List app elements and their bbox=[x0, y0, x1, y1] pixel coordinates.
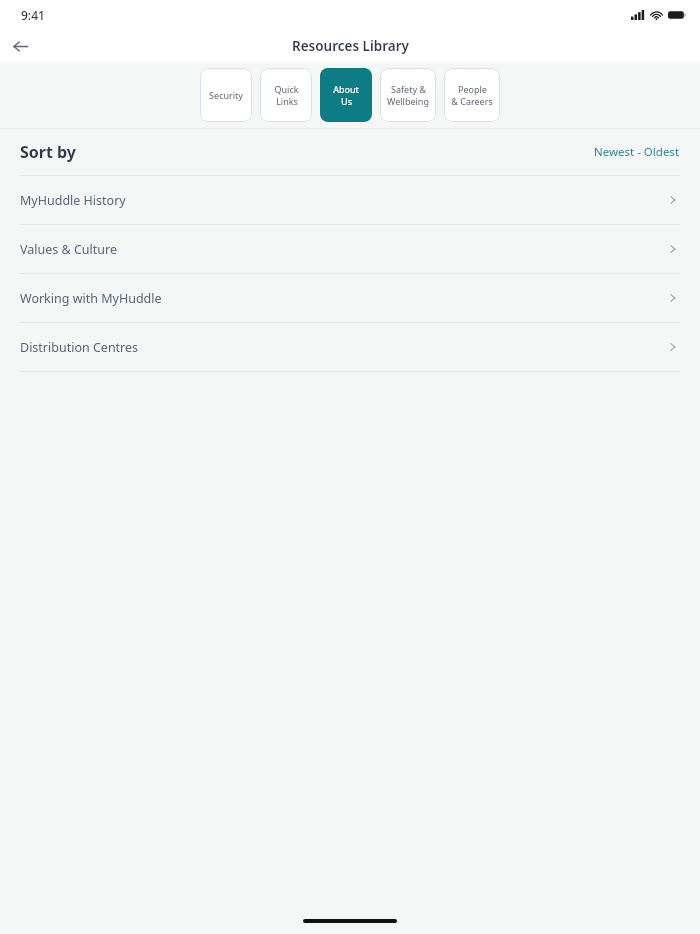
button[interactable]: Distribution Centres bbox=[20, 323, 680, 371]
staticText: Distribution Centres bbox=[20, 339, 139, 356]
staticText: Working with MyHuddle bbox=[20, 290, 162, 307]
button[interactable]: MyHuddle History bbox=[20, 176, 680, 224]
button[interactable]: Values & Culture bbox=[20, 225, 680, 273]
staticText: Safety & bbox=[391, 83, 426, 95]
staticText: MyHuddle History bbox=[20, 192, 126, 209]
button[interactable]: Security bbox=[200, 68, 252, 122]
staticText: Quick bbox=[274, 83, 299, 95]
staticText: About bbox=[333, 83, 359, 95]
button[interactable]: Working with MyHuddle bbox=[20, 274, 680, 322]
button[interactable]: About bbox=[320, 68, 372, 122]
staticText: 9:41 bbox=[21, 7, 45, 23]
staticText: Links bbox=[276, 95, 298, 107]
button[interactable]: Safety & bbox=[380, 68, 436, 122]
staticText: & Careers bbox=[451, 95, 493, 107]
button[interactable]: Newest - Oldest bbox=[594, 144, 680, 160]
staticText: Values & Culture bbox=[20, 241, 117, 258]
staticText: Sort by bbox=[20, 141, 77, 163]
staticText: People bbox=[458, 83, 487, 95]
staticText: Us bbox=[341, 95, 352, 107]
staticText: Newest - Oldest bbox=[594, 144, 680, 160]
staticText: Security bbox=[209, 89, 243, 101]
button[interactable]: Back bbox=[7, 33, 33, 59]
staticText: Wellbeing bbox=[387, 95, 429, 107]
button[interactable]: Quick bbox=[260, 68, 312, 122]
button[interactable]: People bbox=[444, 68, 500, 122]
staticText: Resources Library bbox=[292, 37, 409, 55]
